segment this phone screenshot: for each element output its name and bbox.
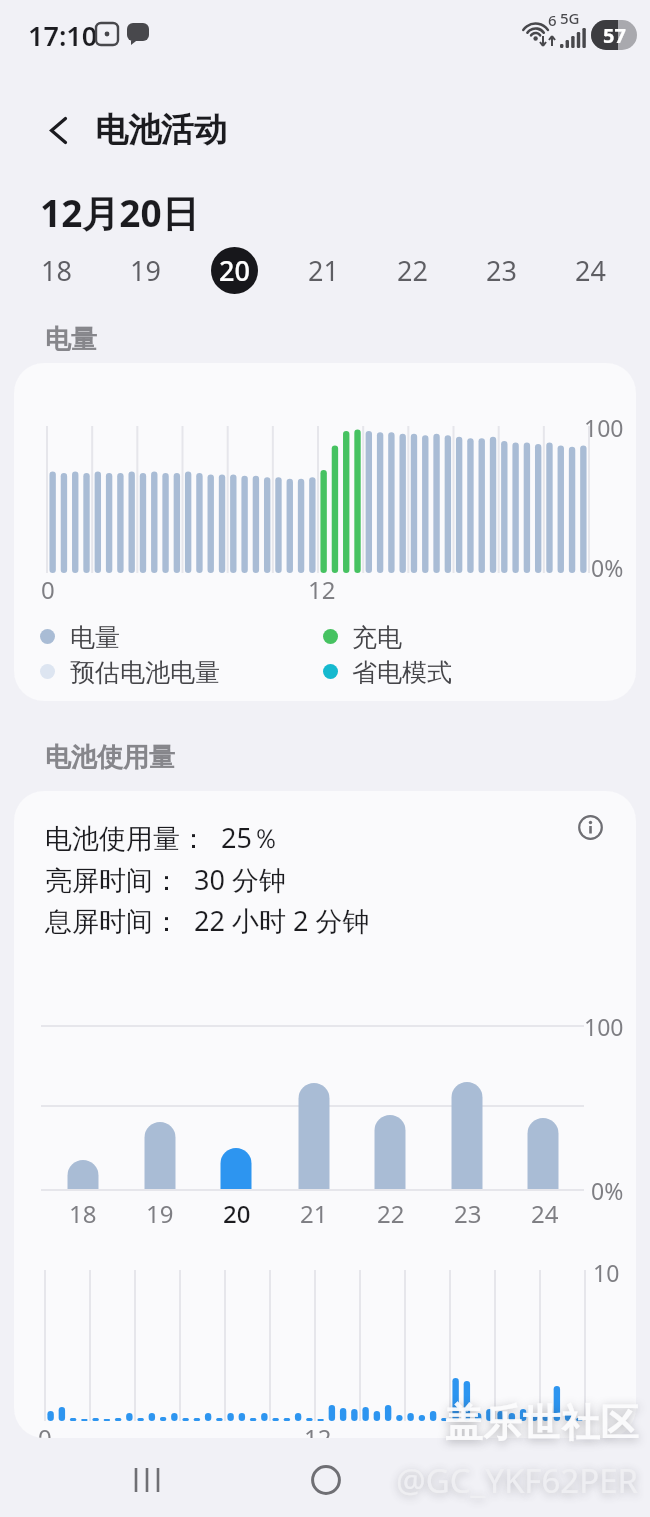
staticText: @GC_YKF62PER <box>396 1458 639 1503</box>
staticText: 6 <box>548 10 557 30</box>
staticText: 18 <box>69 1197 97 1230</box>
staticText: 23 <box>486 252 517 289</box>
staticText: 5G <box>560 8 580 28</box>
staticText: 22 <box>397 252 428 289</box>
staticText: 电池使用量 <box>45 741 175 774</box>
staticText: 电池活动 <box>95 109 227 151</box>
staticText: 18 <box>41 252 72 289</box>
button[interactable] <box>110 1450 186 1510</box>
staticText: 20 <box>219 252 250 289</box>
staticText: 盖乐世社区 <box>444 1399 639 1447</box>
staticText: 24 <box>575 252 606 289</box>
button[interactable]: 20 <box>211 247 258 294</box>
staticText: 21 <box>300 1197 328 1230</box>
button[interactable]: 23 <box>478 247 525 294</box>
staticText: 充电 <box>352 622 402 653</box>
staticText: 19 <box>130 252 161 289</box>
staticText: 20 <box>223 1197 251 1230</box>
staticText: 预估电池电量 <box>70 657 220 688</box>
staticText: 12月20日 <box>40 187 199 238</box>
staticText: 17:10 <box>28 17 98 54</box>
staticText: 19 <box>146 1197 174 1230</box>
staticText: 电量 <box>45 323 97 356</box>
button[interactable]: 21 <box>300 247 347 294</box>
staticText: 57 <box>603 22 626 49</box>
staticText: 0 <box>41 573 55 606</box>
button[interactable]: 19 <box>122 247 169 294</box>
staticText: 0 <box>38 1421 52 1438</box>
staticText: 亮屏时间： 30 分钟 <box>45 861 286 898</box>
staticText: 0% <box>591 1175 624 1206</box>
staticText: 23 <box>454 1197 482 1230</box>
button[interactable] <box>288 1450 364 1510</box>
staticText: 电池使用量： 25％ <box>45 819 279 856</box>
staticText: 省电模式 <box>352 657 452 688</box>
staticText: 息屏时间： 22 小时 2 分钟 <box>45 902 370 939</box>
button[interactable] <box>36 106 80 154</box>
staticText: 0% <box>591 552 624 583</box>
staticText: 24 <box>531 1197 559 1230</box>
staticText: 22 <box>377 1197 405 1230</box>
button[interactable]: 18 <box>33 247 80 294</box>
staticText: 21 <box>308 252 339 289</box>
button[interactable] <box>572 809 608 845</box>
staticText: 12 <box>308 573 336 606</box>
staticText: 电量 <box>70 622 120 653</box>
staticText: 12 <box>304 1421 332 1438</box>
staticText: 100 <box>584 1011 624 1042</box>
button[interactable]: 24 <box>567 247 614 294</box>
staticText: 10 <box>593 1257 620 1288</box>
button[interactable]: 22 <box>389 247 436 294</box>
staticText: 100 <box>584 412 624 443</box>
